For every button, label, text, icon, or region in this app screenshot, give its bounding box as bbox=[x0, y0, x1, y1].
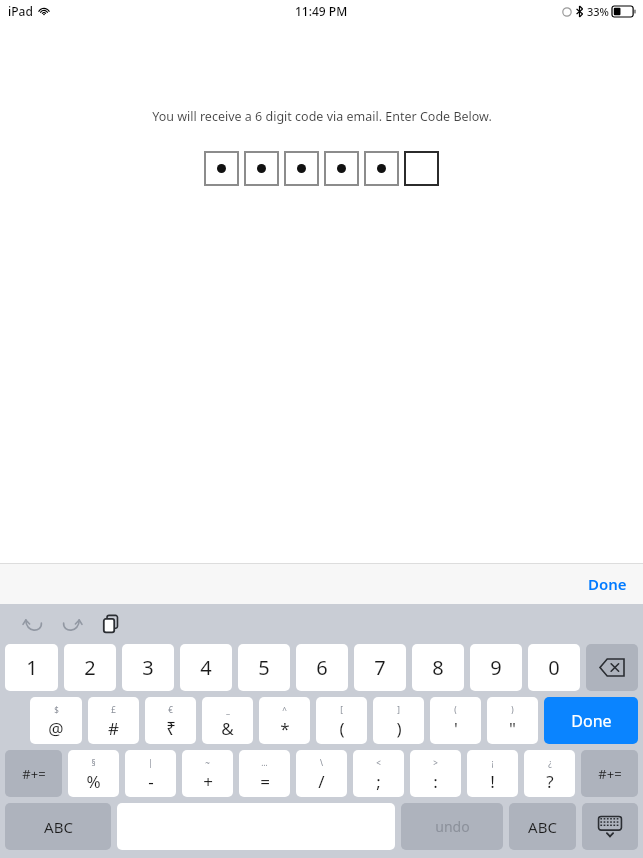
staticText: - bbox=[148, 770, 154, 793]
button[interactable]: 4 bbox=[180, 644, 232, 691]
staticText: … bbox=[261, 757, 268, 768]
staticText: 1 bbox=[26, 654, 38, 681]
staticText: ¡ bbox=[491, 757, 494, 768]
staticText: ! bbox=[490, 770, 495, 793]
button[interactable]: < bbox=[353, 750, 404, 797]
button[interactable]: 8 bbox=[412, 644, 464, 691]
button[interactable] bbox=[204, 151, 239, 186]
staticText: < bbox=[376, 757, 381, 768]
button[interactable]: 9 bbox=[470, 644, 522, 691]
button[interactable]: Undo bbox=[16, 607, 50, 641]
staticText: 8 bbox=[432, 654, 444, 681]
staticText: You will receive a 6 digit code via emai… bbox=[152, 108, 492, 125]
button[interactable]: £ bbox=[88, 697, 139, 744]
staticText: ¿ bbox=[548, 757, 552, 768]
staticText: ABC bbox=[44, 817, 73, 837]
staticText: #+= bbox=[598, 765, 622, 783]
staticText: ~ bbox=[205, 757, 210, 768]
button[interactable] bbox=[404, 151, 439, 186]
button[interactable]: $ bbox=[30, 697, 82, 744]
button[interactable] bbox=[364, 151, 399, 186]
staticText: 0 bbox=[548, 654, 560, 681]
button[interactable]: > bbox=[410, 750, 461, 797]
staticText: 33% bbox=[587, 4, 609, 19]
button[interactable]: Backspace bbox=[586, 644, 638, 691]
staticText: ABC bbox=[528, 817, 557, 837]
button[interactable]: Done bbox=[544, 697, 638, 744]
staticText: ) bbox=[396, 717, 402, 740]
button[interactable]: ) bbox=[487, 697, 538, 744]
button[interactable]: undo bbox=[401, 803, 503, 850]
other: Hide keyboard bbox=[582, 803, 638, 850]
staticText: ; bbox=[376, 770, 381, 793]
button[interactable]: 1 bbox=[5, 644, 58, 691]
staticText: # bbox=[108, 717, 119, 740]
button[interactable]: Paste bbox=[94, 607, 128, 641]
button[interactable] bbox=[324, 151, 359, 186]
staticText: ^ bbox=[282, 704, 287, 715]
staticText: 11:49 PM bbox=[295, 3, 348, 19]
staticText: ) bbox=[511, 704, 514, 715]
button[interactable]: ABC bbox=[5, 803, 111, 850]
staticText: \ bbox=[320, 757, 323, 768]
button[interactable]: ^ bbox=[259, 697, 310, 744]
button[interactable]: _ bbox=[202, 697, 253, 744]
staticText: € bbox=[168, 704, 173, 715]
staticText: = bbox=[260, 770, 270, 793]
staticText: 4 bbox=[200, 654, 212, 681]
button[interactable]: 0 bbox=[528, 644, 580, 691]
staticText: Done bbox=[571, 710, 612, 732]
staticText: § bbox=[91, 757, 96, 768]
staticText: & bbox=[221, 717, 234, 740]
staticText: @ bbox=[48, 717, 64, 740]
button[interactable] bbox=[284, 151, 319, 186]
staticText: / bbox=[318, 770, 325, 793]
button[interactable]: \ bbox=[296, 750, 347, 797]
staticText: : bbox=[433, 770, 438, 793]
staticText: undo bbox=[435, 817, 470, 836]
button[interactable]: ] bbox=[373, 697, 424, 744]
staticText: ( bbox=[339, 717, 345, 740]
button[interactable]: 5 bbox=[238, 644, 290, 691]
button[interactable]: 3 bbox=[122, 644, 174, 691]
staticText: ₹ bbox=[166, 717, 176, 740]
button[interactable]: [ bbox=[316, 697, 367, 744]
staticText: ' bbox=[454, 717, 458, 740]
button[interactable]: 2 bbox=[64, 644, 116, 691]
staticText: iPad bbox=[8, 3, 33, 19]
button[interactable]: #+= bbox=[5, 750, 62, 797]
button[interactable]: Redo bbox=[55, 607, 89, 641]
staticText: 3 bbox=[142, 654, 154, 681]
staticText: | bbox=[148, 757, 153, 768]
button[interactable]: #+= bbox=[581, 750, 638, 797]
button[interactable]: 6 bbox=[296, 644, 348, 691]
button[interactable]: ABC bbox=[509, 803, 576, 850]
button[interactable]: Done bbox=[580, 568, 635, 600]
button[interactable] bbox=[244, 151, 279, 186]
button[interactable]: ¿ bbox=[524, 750, 575, 797]
staticText: + bbox=[203, 770, 213, 793]
staticText: $ bbox=[54, 704, 59, 715]
staticText: * bbox=[280, 717, 290, 740]
staticText: 9 bbox=[490, 654, 502, 681]
button[interactable]: € bbox=[145, 697, 196, 744]
button[interactable]: ¡ bbox=[467, 750, 518, 797]
staticText: % bbox=[86, 770, 101, 793]
button[interactable]: | bbox=[125, 750, 176, 797]
staticText: #+= bbox=[22, 765, 46, 783]
staticText: > bbox=[433, 757, 438, 768]
button[interactable]: § bbox=[68, 750, 119, 797]
button[interactable]: ~ bbox=[182, 750, 233, 797]
button[interactable]: 7 bbox=[354, 644, 406, 691]
staticText: £ bbox=[111, 704, 116, 715]
button[interactable]: Hide keyboard bbox=[582, 803, 638, 850]
staticText: 7 bbox=[374, 654, 386, 681]
other: Backspace bbox=[586, 644, 638, 691]
staticText: ? bbox=[546, 770, 554, 793]
staticText: " bbox=[509, 717, 516, 740]
button[interactable]: ( bbox=[430, 697, 481, 744]
staticText: ] bbox=[397, 704, 400, 715]
button[interactable]: … bbox=[239, 750, 290, 797]
